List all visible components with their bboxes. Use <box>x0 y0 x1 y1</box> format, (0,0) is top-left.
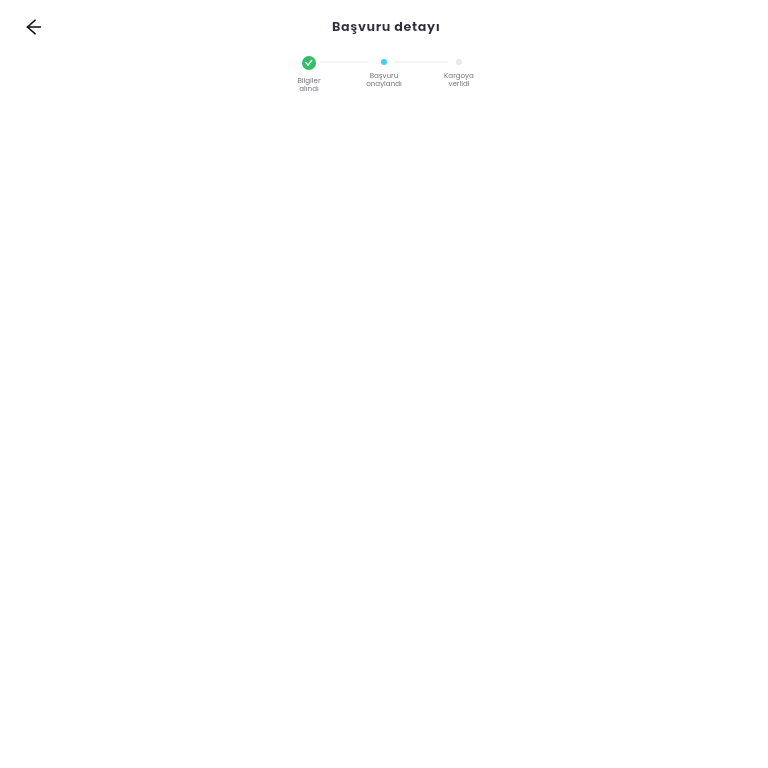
button[interactable]: Kargoya verildi <box>429 53 489 93</box>
button[interactable]: Back <box>14 7 54 47</box>
staticText: Başvuru onaylandı <box>354 72 414 88</box>
staticText: Başvuru detayı <box>332 18 441 36</box>
button[interactable]: Başvuru onaylandı <box>354 53 414 93</box>
staticText: Bilgiler alındı <box>279 77 339 93</box>
staticText: Kargoya verildi <box>429 72 489 88</box>
button[interactable]: Bilgiler alındı <box>279 54 339 94</box>
